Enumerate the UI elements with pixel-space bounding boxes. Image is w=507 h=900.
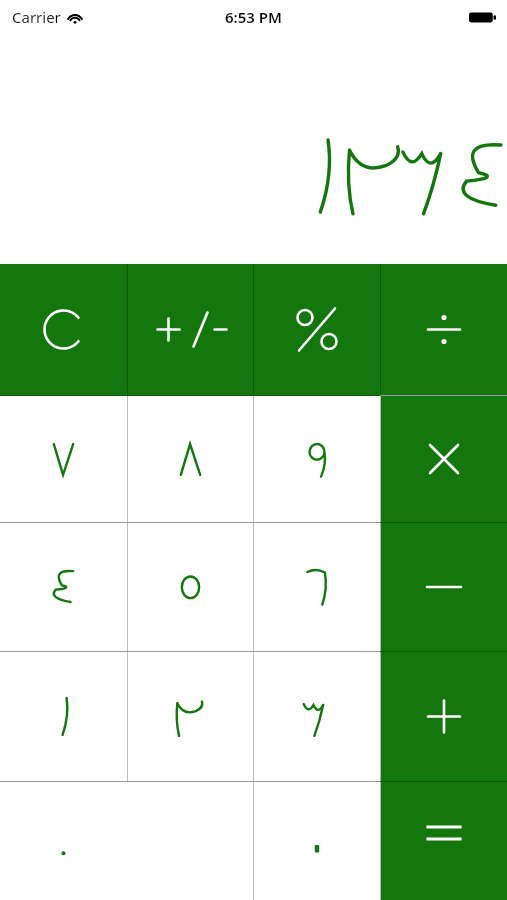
button[interactable] xyxy=(254,652,380,781)
button[interactable] xyxy=(0,652,127,781)
button[interactable]: Equals xyxy=(381,782,507,900)
staticText: 6:53 PM xyxy=(225,7,282,27)
button[interactable] xyxy=(0,523,127,651)
button[interactable] xyxy=(0,782,253,900)
button[interactable]: Subtract xyxy=(381,523,507,651)
button[interactable]: Plus minus xyxy=(128,264,253,395)
button[interactable] xyxy=(128,652,253,781)
button[interactable] xyxy=(0,396,127,522)
staticText: Carrier xyxy=(12,7,61,27)
button[interactable]: Clear xyxy=(0,264,127,395)
other: Battery full xyxy=(469,11,496,24)
button[interactable] xyxy=(254,523,380,651)
button[interactable]: Decimal point xyxy=(254,782,380,900)
button[interactable]: Divide xyxy=(381,264,507,395)
button[interactable]: Add xyxy=(381,652,507,781)
button[interactable] xyxy=(128,396,253,522)
button[interactable] xyxy=(128,523,253,651)
button[interactable]: Percent xyxy=(254,264,380,395)
button[interactable] xyxy=(254,396,380,522)
button[interactable]: Multiply xyxy=(381,396,507,522)
other: Wi-Fi signal xyxy=(67,11,83,24)
